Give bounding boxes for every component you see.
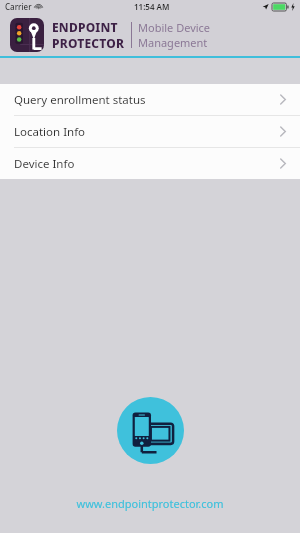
staticText: 11:54 AM: [134, 1, 170, 12]
staticText: Carrier: [5, 1, 32, 12]
button[interactable]: Location Info: [0, 116, 300, 147]
staticText: Device Info: [14, 156, 75, 172]
button[interactable]: Device Info: [0, 148, 300, 179]
staticText: Management: [138, 35, 208, 50]
staticText: PROTECTOR: [52, 35, 125, 51]
staticText: www.endpointprotector.com: [0, 496, 300, 511]
button[interactable]: Query enrollment status: [0, 84, 300, 115]
button[interactable]: www.endpointprotector.com: [0, 496, 300, 511]
staticText: Location Info: [14, 124, 86, 140]
staticText: ENDPOINT: [52, 19, 118, 35]
staticText: Query enrollment status: [14, 92, 146, 108]
staticText: Mobile Device: [138, 20, 211, 35]
